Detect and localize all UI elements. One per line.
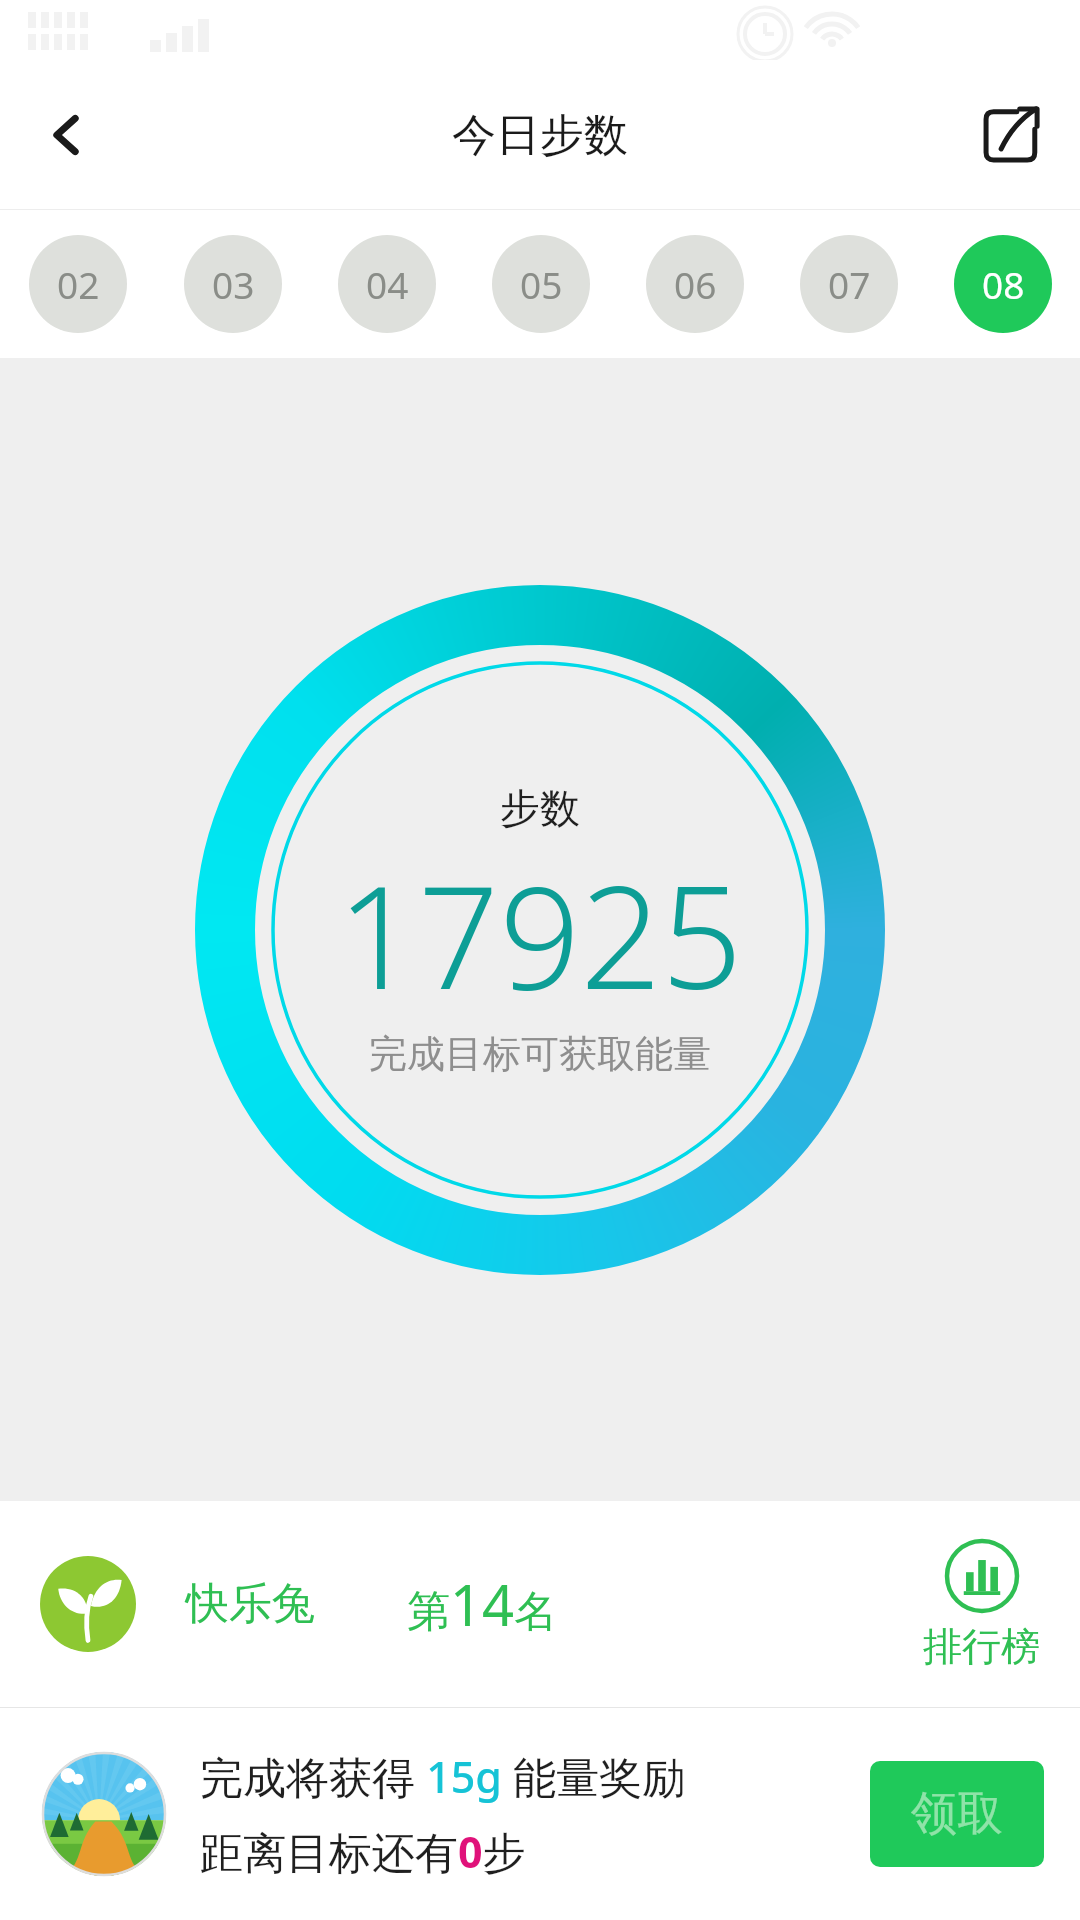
button[interactable]: Share	[968, 92, 1054, 178]
staticText: 排行榜	[923, 1622, 1040, 1671]
button[interactable]: 02	[29, 235, 127, 333]
staticText: 04	[366, 259, 409, 309]
staticText: 完成将获得 15g 能量奖励	[200, 1747, 686, 1806]
staticText: 领取	[911, 1785, 1003, 1843]
staticText: 第14名	[407, 1566, 558, 1642]
staticText: 今日步数	[452, 108, 628, 163]
button[interactable]: 08	[954, 235, 1052, 333]
staticText: 步数	[500, 783, 580, 833]
staticText: 完成目标可获取能量	[369, 1030, 711, 1078]
staticText: 07	[828, 259, 871, 309]
button[interactable]: 排行榜	[909, 1538, 1054, 1671]
staticText: 02	[57, 259, 100, 309]
button[interactable]: 04	[338, 235, 436, 333]
button[interactable]: Back	[22, 91, 110, 179]
staticText: 距离目标还有0步	[200, 1822, 526, 1881]
button[interactable]: 领取	[870, 1761, 1044, 1867]
staticText: 06	[674, 259, 717, 309]
button[interactable]: 快乐兔	[180, 1571, 321, 1637]
staticText: 05	[520, 259, 563, 309]
staticText: 快乐兔	[186, 1577, 315, 1631]
button[interactable]: 07	[800, 235, 898, 333]
staticText: 08	[982, 259, 1025, 309]
button[interactable]: 03	[184, 235, 282, 333]
button[interactable]: 第14名	[401, 1560, 564, 1648]
button[interactable]: 05	[492, 235, 590, 333]
staticText: 03	[212, 259, 255, 309]
staticText: 17925	[337, 837, 743, 1030]
button[interactable]: 06	[646, 235, 744, 333]
